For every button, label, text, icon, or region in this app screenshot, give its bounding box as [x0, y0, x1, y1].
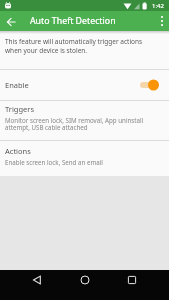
button[interactable]: Actions	[0, 141, 169, 176]
staticText: Triggers	[5, 104, 34, 114]
staticText: 1:42	[152, 2, 164, 10]
button[interactable]	[155, 11, 169, 31]
staticText: Actions	[5, 146, 31, 156]
button[interactable]	[57, 270, 113, 300]
staticText: Enable screen lock, Send an email	[5, 158, 103, 166]
staticText: Monitor screen lock, SIM removal, App un…	[5, 116, 144, 132]
button[interactable]: Triggers	[0, 101, 169, 140]
button[interactable]	[0, 11, 22, 31]
staticText: Enable	[5, 80, 29, 90]
button[interactable]	[0, 270, 57, 300]
staticText: Auto Theft Detection	[30, 15, 116, 27]
button[interactable]: Enable	[0, 70, 169, 100]
staticText: This feature will automatically trigger …	[5, 37, 143, 55]
button[interactable]	[113, 270, 169, 300]
